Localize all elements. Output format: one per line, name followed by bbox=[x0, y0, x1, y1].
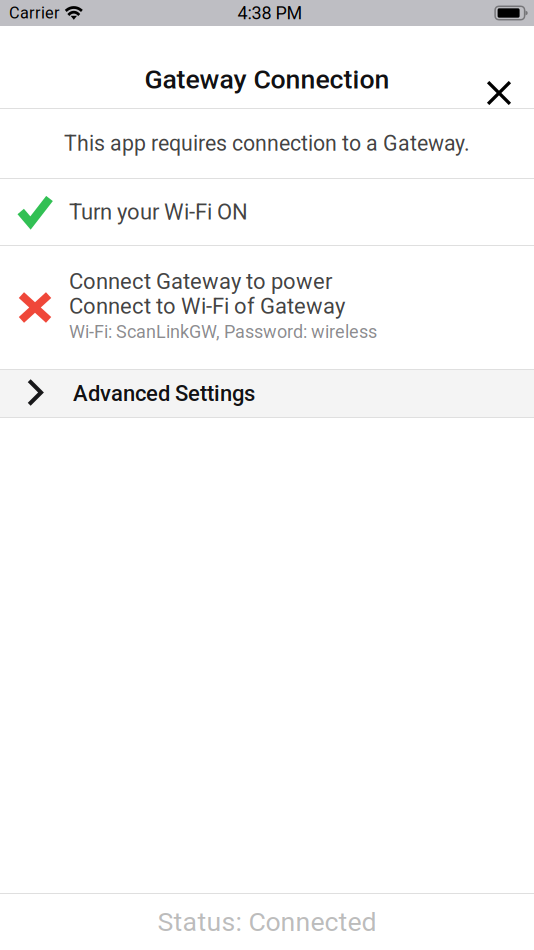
staticText: Wi-Fi: ScanLinkGW, Password: wireless bbox=[69, 321, 377, 342]
staticText: 4:38 PM bbox=[237, 2, 302, 24]
button[interactable]: Turn your Wi-Fi ON bbox=[0, 179, 534, 245]
button[interactable]: Advanced Settings bbox=[0, 370, 534, 417]
staticText: Status: Connected bbox=[157, 906, 376, 938]
staticText: Connect Gateway to power bbox=[69, 269, 332, 294]
button[interactable]: Connect Gateway to power bbox=[0, 246, 534, 369]
staticText: Carrier bbox=[9, 3, 60, 23]
staticText: Advanced Settings bbox=[73, 381, 255, 406]
staticText: Gateway Connection bbox=[144, 64, 389, 95]
button[interactable]: Close bbox=[476, 70, 522, 116]
staticText: Turn your Wi-Fi ON bbox=[69, 199, 248, 225]
staticText: This app requires connection to a Gatewa… bbox=[64, 131, 470, 156]
staticText: Connect to Wi-Fi of Gateway bbox=[69, 293, 345, 319]
